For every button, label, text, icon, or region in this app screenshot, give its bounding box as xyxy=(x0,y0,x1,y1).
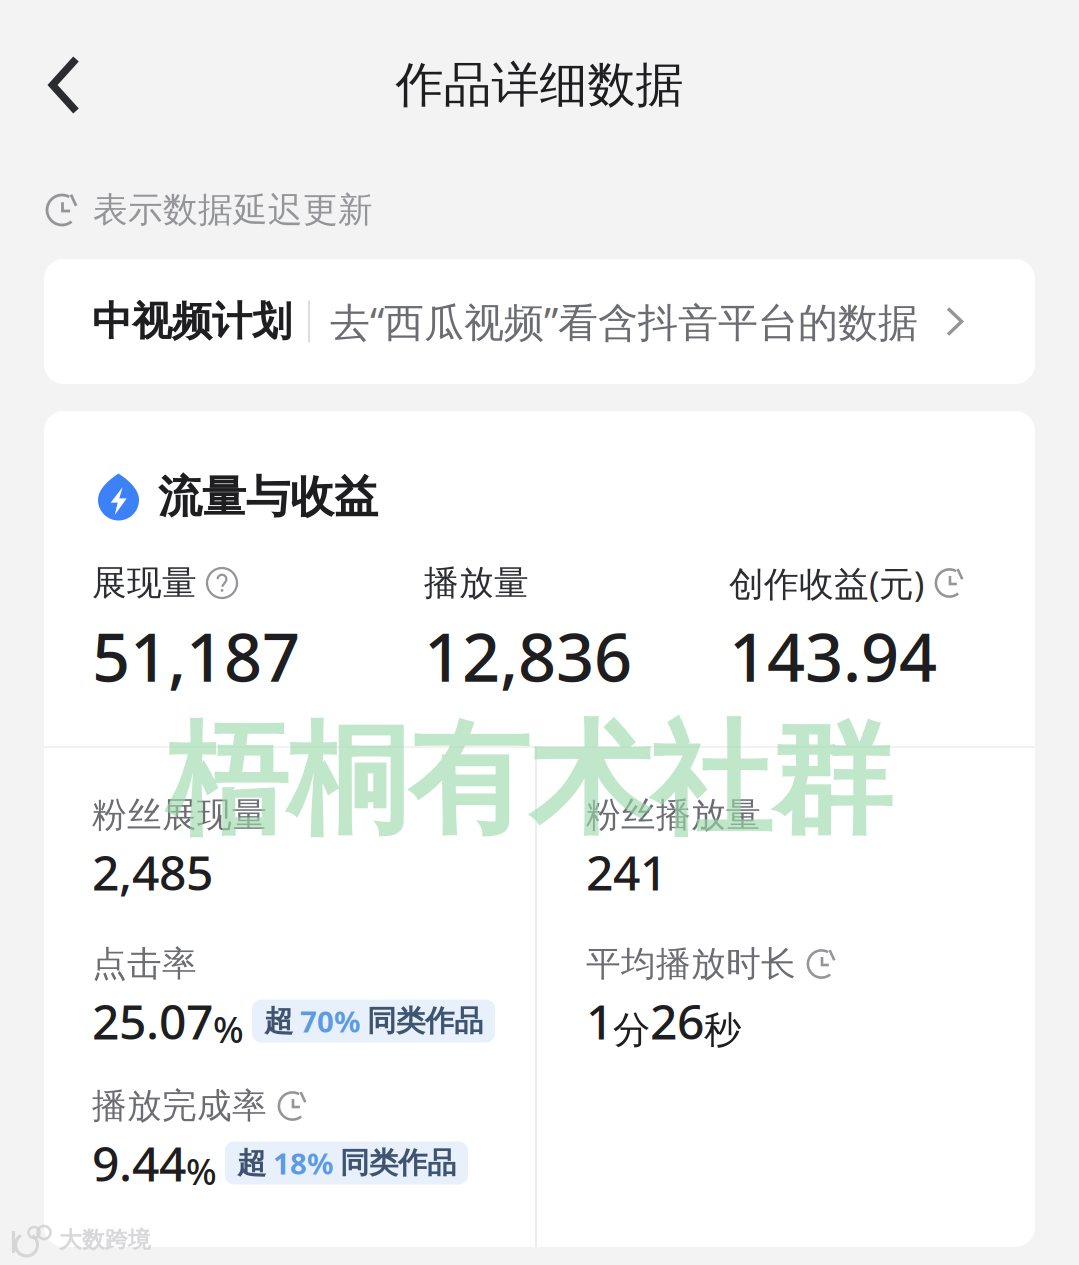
staticText: 流量与收益 xyxy=(158,470,378,524)
button[interactable]: 返回 xyxy=(0,33,106,137)
staticText: 26 xyxy=(650,989,704,1053)
staticText: 51,187 xyxy=(92,612,300,700)
staticText: 作品详细数据 xyxy=(395,55,683,114)
staticText: 粉丝播放量 xyxy=(586,794,761,836)
staticText: 去“西瓜视频”看含抖音平台的数据 xyxy=(330,295,918,348)
staticText: 18% xyxy=(273,1143,333,1182)
staticText: 同类作品 xyxy=(367,1003,483,1039)
staticText: 超 xyxy=(237,1145,266,1181)
staticText: 梧桐有术社群 xyxy=(166,706,892,855)
staticText: 中视频计划 xyxy=(92,297,292,346)
button[interactable]: 数据延迟更新 xyxy=(277,1090,308,1121)
staticText: 大数跨境 xyxy=(59,1226,151,1254)
staticText: 25.07 xyxy=(92,989,213,1053)
staticText: 播放完成率 xyxy=(92,1085,267,1127)
staticText: 2,485 xyxy=(92,840,213,904)
staticText: 播放量 xyxy=(424,562,529,604)
staticText: % xyxy=(186,1147,217,1195)
staticText: 点击率 xyxy=(92,943,197,985)
staticText: 12,836 xyxy=(424,612,632,700)
button[interactable]: 数据延迟更新 xyxy=(934,567,965,598)
button[interactable]: 中视频计划 xyxy=(44,259,1035,384)
staticText: 粉丝展现量 xyxy=(92,794,267,836)
staticText: 70% xyxy=(300,1001,360,1040)
staticText: 143.94 xyxy=(729,612,937,700)
staticText: 秒 xyxy=(704,1007,741,1053)
staticText: 241 xyxy=(586,840,667,904)
staticText: 1 xyxy=(586,989,613,1053)
staticText: 表示数据延迟更新 xyxy=(93,189,373,231)
button[interactable]: 数据延迟更新 xyxy=(806,948,837,979)
staticText: 分 xyxy=(613,1007,650,1053)
staticText: 平均播放时长 xyxy=(586,943,796,985)
staticText: 展现量 xyxy=(92,562,197,604)
button[interactable]: 指标说明 xyxy=(207,568,237,598)
staticText: 同类作品 xyxy=(340,1145,456,1181)
staticText: 9.44 xyxy=(92,1131,186,1195)
staticText: 超 xyxy=(264,1003,293,1039)
staticText: 创作收益(元) xyxy=(729,560,924,606)
staticText: % xyxy=(213,1005,244,1053)
